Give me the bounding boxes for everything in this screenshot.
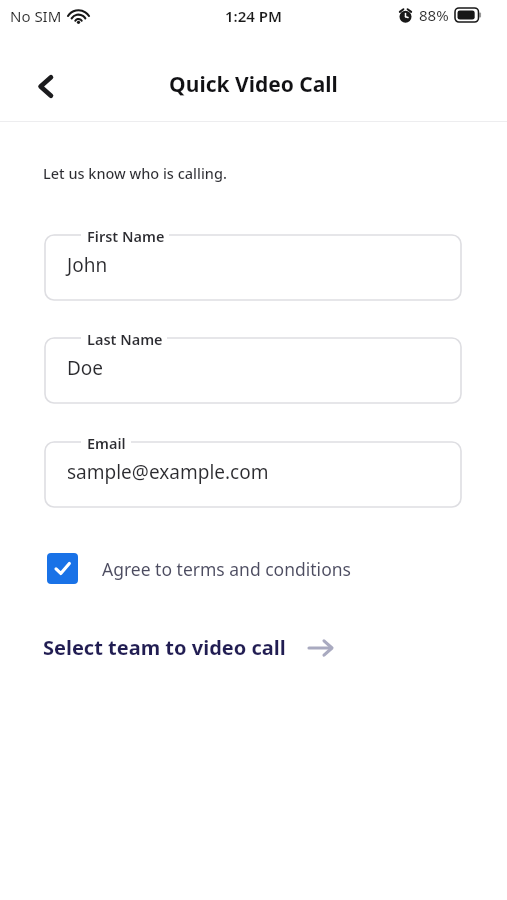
staticText: First Name xyxy=(87,226,165,246)
button[interactable]: Last Name xyxy=(45,338,461,403)
button[interactable]: First Name xyxy=(45,235,461,300)
staticText: Doe xyxy=(67,355,104,381)
staticText: John xyxy=(67,252,108,278)
button[interactable]: Agree to terms and conditions xyxy=(43,549,355,588)
staticText: Let us know who is calling. xyxy=(43,163,227,183)
staticText: Email xyxy=(87,433,126,453)
staticText: 1:24 PM xyxy=(225,6,282,26)
button[interactable]: Back xyxy=(27,68,63,104)
staticText: sample@example.com xyxy=(67,459,269,485)
staticText: Agree to terms and conditions xyxy=(102,557,351,581)
other: Continue xyxy=(308,637,334,659)
button[interactable]: Email xyxy=(45,442,461,507)
button[interactable]: Select team to video call xyxy=(39,628,338,667)
staticText: No SIM xyxy=(10,6,62,26)
staticText: Quick Video Call xyxy=(169,70,338,99)
staticText: Select team to video call xyxy=(43,634,286,661)
staticText: Last Name xyxy=(87,329,163,349)
staticText: 88% xyxy=(419,5,449,25)
